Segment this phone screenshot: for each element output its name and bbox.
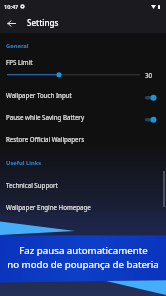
button[interactable]: 30 [0, 68, 166, 82]
staticText: no modo de poupança de bateria [7, 258, 159, 271]
staticText: Wallpaper Touch Input [6, 91, 72, 99]
button[interactable]: Wallpaper Engine Homepage [0, 196, 166, 218]
button[interactable]: Pause while Saving Battery [0, 106, 166, 128]
staticText: FPS Limit [6, 58, 33, 66]
staticText: General [6, 42, 29, 50]
button[interactable]: Wallpaper Touch Input [0, 84, 166, 106]
staticText: Wallpaper Engine Homepage [6, 203, 91, 211]
button[interactable]: Back [3, 15, 20, 32]
staticText: Useful Links [6, 159, 42, 167]
staticText: Faz pausa automaticamente [19, 244, 148, 257]
button[interactable]: Technical Support [0, 174, 166, 196]
staticText: 30 [145, 71, 153, 79]
staticText: Technical Support [6, 181, 58, 189]
staticText: Settings [27, 17, 59, 28]
staticText: 10:47 [4, 3, 19, 11]
staticText: Pause while Saving Battery [6, 113, 85, 121]
staticText: Restore Official Wallpapers [6, 135, 85, 143]
button[interactable]: Restore Official Wallpapers [0, 128, 166, 150]
